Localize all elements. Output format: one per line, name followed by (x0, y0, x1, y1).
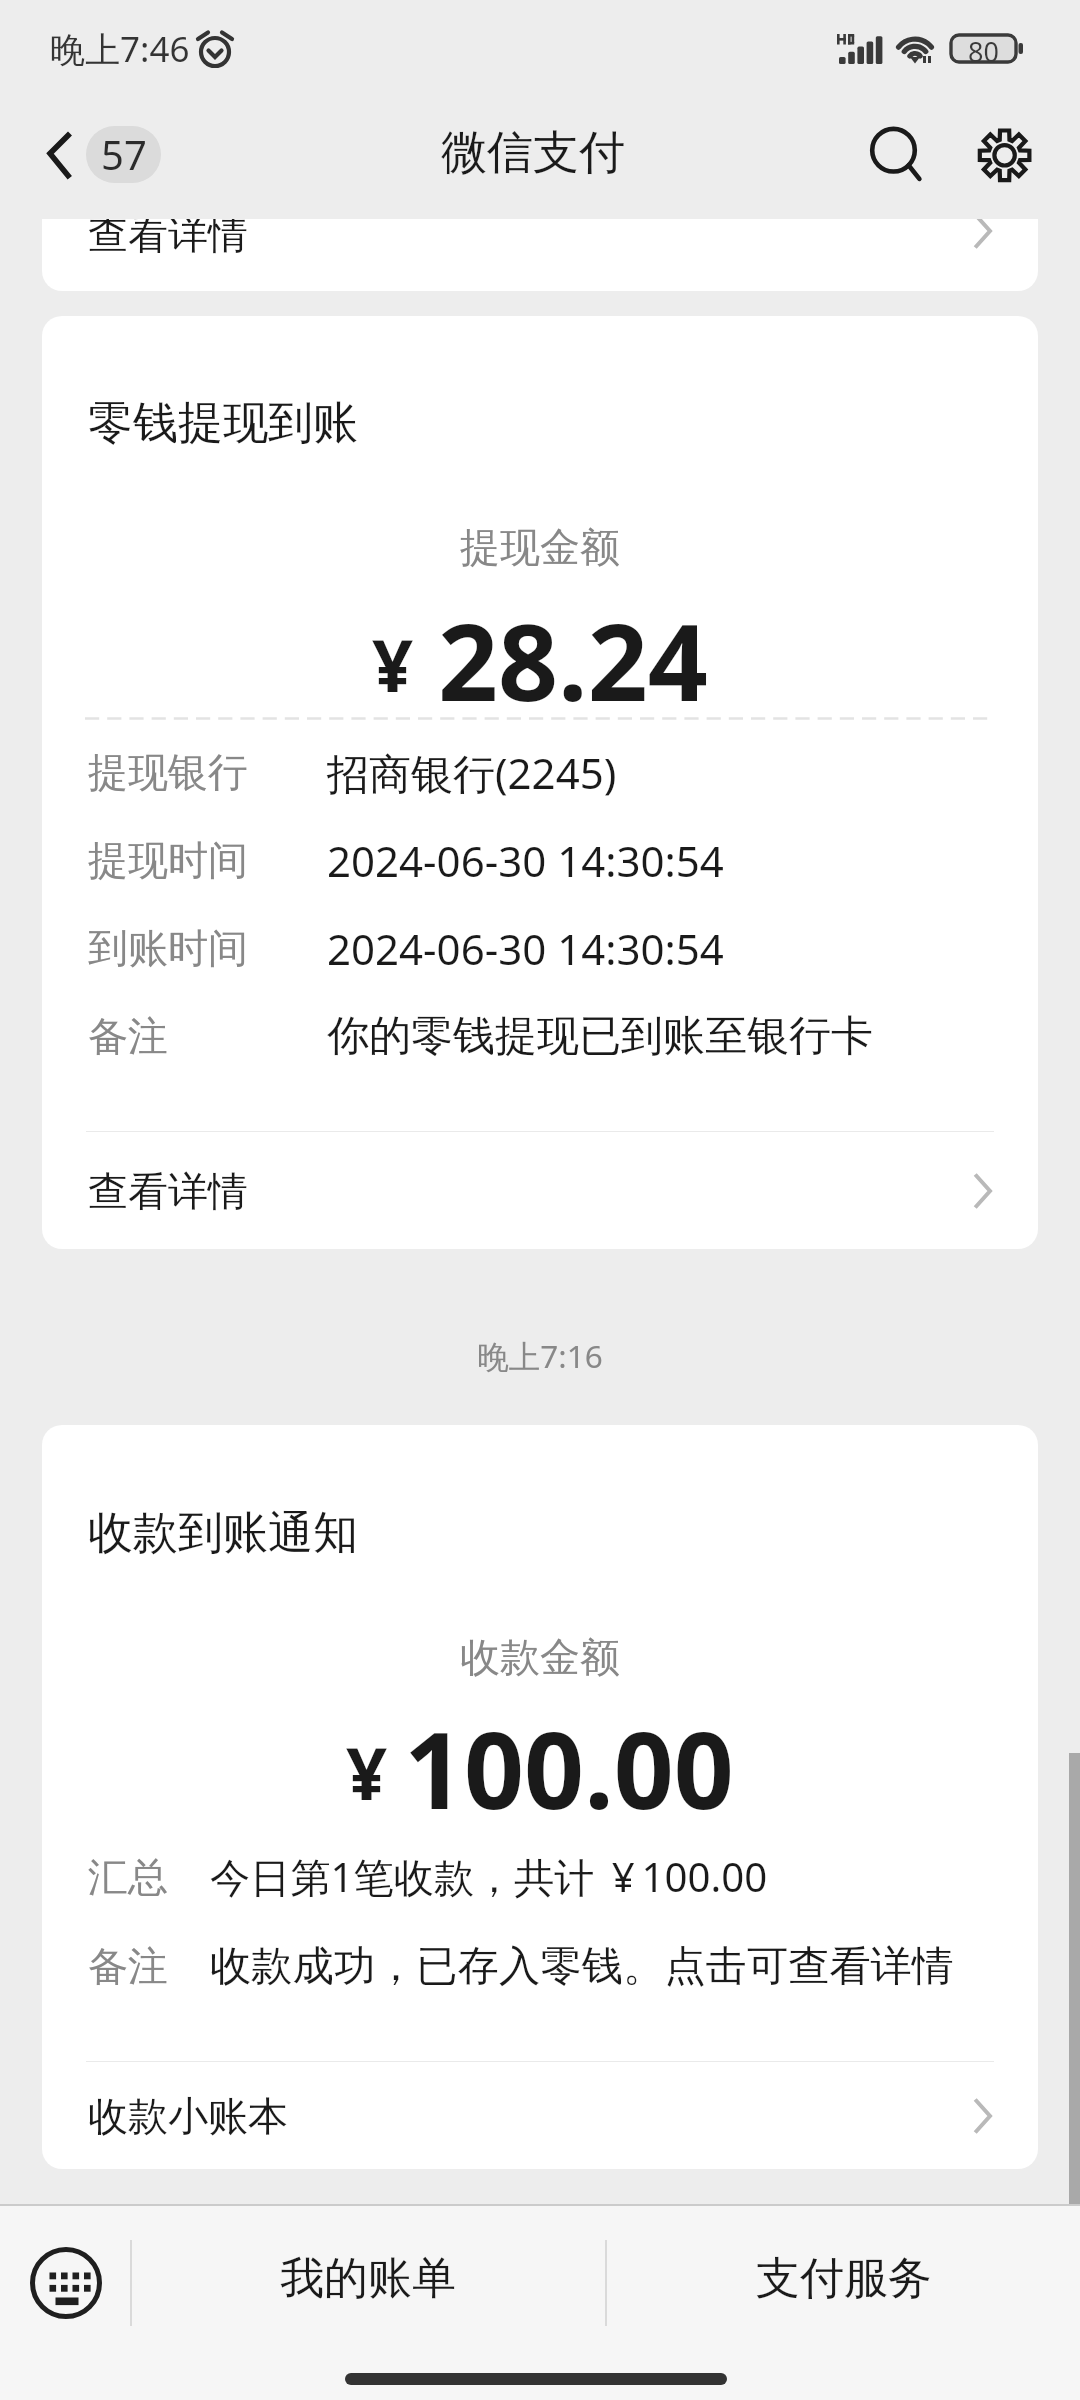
staticText: 备注 (88, 1011, 168, 1061)
staticText: 28.24 (438, 589, 708, 732)
staticText: 微信支付 (0, 124, 1073, 182)
staticText: 提现时间 (88, 835, 248, 885)
staticText: 查看详情 (88, 219, 248, 259)
staticText: ¥ (372, 615, 414, 713)
staticText: 备注 (88, 1941, 168, 1991)
button[interactable]: Settings (957, 108, 1053, 218)
staticText: 招商银行(2245) (327, 744, 617, 801)
staticText: 你的零钱提现已到账至银行卡 (327, 1010, 873, 1063)
staticText: 收款到账通知 (88, 1505, 358, 1562)
staticText: 2024-06-30 14:30:54 (327, 920, 724, 977)
button[interactable]: 查看详情 (42, 219, 1038, 291)
staticText: 晚上7:46 (50, 25, 190, 73)
staticText: 我的账单 (280, 2251, 456, 2306)
staticText: 今日第1笔收款，共计 ¥ 100.00 (210, 1849, 768, 1904)
staticText: 收款成功，已存入零钱。点击可查看详情 (210, 1940, 954, 1992)
button[interactable]: 支付服务 (607, 2199, 1080, 2357)
staticText: 提现金额 (42, 522, 1038, 572)
button[interactable]: Keyboard (30, 2247, 102, 2319)
button[interactable]: 查看详情 (42, 1132, 1038, 1249)
staticText: 汇总 (88, 1852, 168, 1902)
staticText: 提现银行 (88, 747, 248, 797)
staticText: 收款小账本 (88, 2091, 288, 2141)
staticText: 晚上7:16 (0, 1334, 1080, 1377)
button[interactable]: Search (845, 108, 943, 218)
staticText: 57 (101, 127, 147, 181)
staticText: 80 (968, 33, 999, 70)
staticText: ¥ (346, 1723, 388, 1821)
staticText: 2024-06-30 14:30:54 (327, 832, 724, 889)
button[interactable]: 收款小账本 (42, 2062, 1038, 2169)
staticText: 收款金额 (42, 1632, 1038, 1682)
staticText: 查看详情 (88, 1166, 248, 1216)
staticText: 零钱提现到账 (88, 395, 358, 452)
staticText: 支付服务 (756, 2251, 932, 2306)
button[interactable]: 我的账单 (131, 2199, 605, 2357)
staticText: 100.00 (404, 1697, 734, 1840)
staticText: 到账时间 (88, 923, 248, 973)
button[interactable]: Back, 57 unread (28, 118, 168, 202)
